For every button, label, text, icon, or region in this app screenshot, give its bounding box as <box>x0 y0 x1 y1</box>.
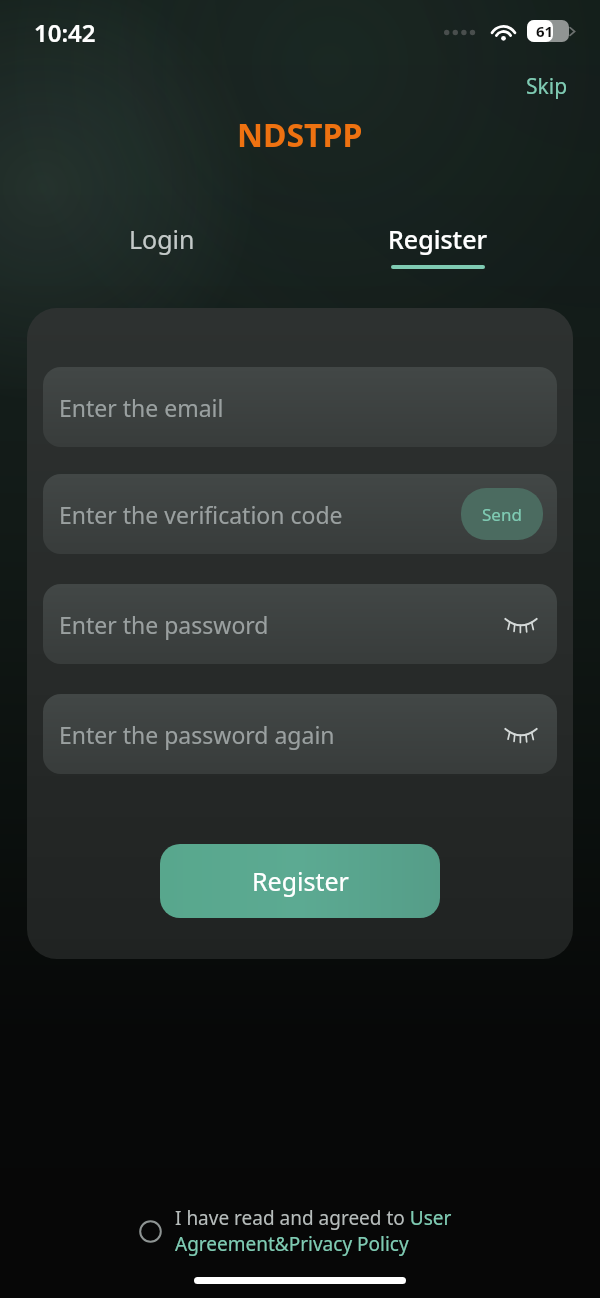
button[interactable]: Enter the password <box>43 584 557 664</box>
staticText: Skip <box>526 72 568 101</box>
button[interactable]: Enter the password again <box>43 694 557 774</box>
staticText: Register <box>252 864 349 898</box>
button[interactable]: Agree checkbox <box>0 1205 600 1256</box>
staticText: I have read and agreed to User Agreement… <box>175 1205 463 1256</box>
staticText: Register <box>388 222 488 256</box>
button[interactable]: Register <box>160 844 440 918</box>
staticText: Login <box>129 222 195 256</box>
staticText: 10:42 <box>34 16 96 49</box>
button[interactable]: Show password <box>497 710 545 758</box>
other: Agree checkbox <box>137 1218 163 1244</box>
staticText: Enter the password <box>59 609 269 640</box>
staticText: Enter the email <box>59 392 224 423</box>
button[interactable]: Skip <box>518 68 576 105</box>
button[interactable]: Show password <box>497 600 545 648</box>
staticText: 61 <box>536 21 554 41</box>
staticText: Enter the password again <box>59 719 335 750</box>
button[interactable]: Enter the email <box>43 367 557 447</box>
button[interactable]: Login <box>109 216 215 262</box>
button[interactable]: Send <box>461 488 543 540</box>
staticText: Send <box>482 503 522 526</box>
staticText: Enter the verification code <box>59 499 343 530</box>
button[interactable]: Enter the verification code <box>43 474 557 554</box>
staticText: NDSTPP <box>237 113 363 157</box>
button[interactable]: Register <box>368 216 508 275</box>
